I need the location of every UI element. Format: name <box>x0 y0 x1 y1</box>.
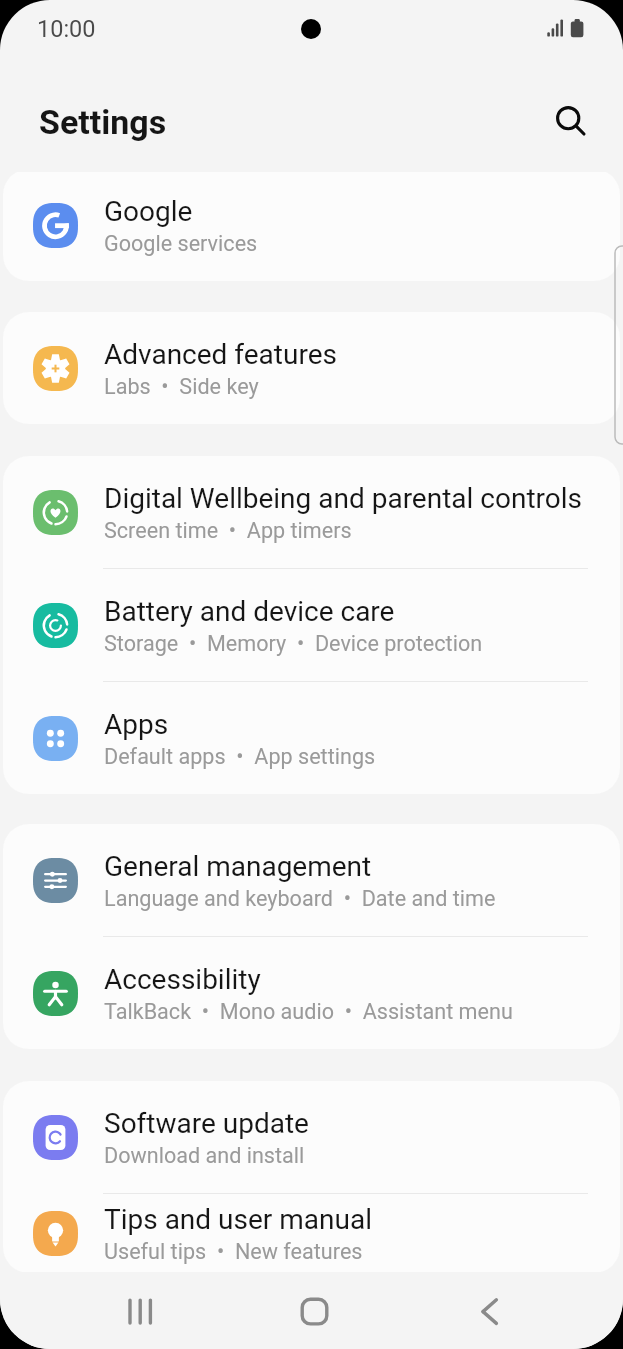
staticText: Useful tips • New features <box>104 1239 363 1264</box>
staticText: Download and install <box>104 1143 305 1168</box>
staticText: Advanced features <box>104 338 337 371</box>
staticText: Labs • Side key <box>104 374 259 399</box>
button[interactable]: Search <box>536 89 600 153</box>
button[interactable]: Battery and device care <box>3 569 620 681</box>
staticText: Storage • Memory • Device protection <box>104 631 483 656</box>
staticText: Screen time • App timers <box>104 518 352 543</box>
staticText: 10:00 <box>37 15 96 43</box>
button[interactable]: Digital Wellbeing and parental controls <box>3 456 620 568</box>
button[interactable]: Advanced features <box>3 312 620 424</box>
staticText: Settings <box>39 102 167 142</box>
staticText: TalkBack • Mono audio • Assistant menu <box>104 999 513 1024</box>
staticText: General management <box>104 850 372 883</box>
staticText: Tips and user manual <box>104 1203 372 1236</box>
button[interactable]: Tips and user manual <box>3 1194 620 1273</box>
button[interactable]: Back <box>416 1272 623 1349</box>
staticText: Google <box>104 195 193 228</box>
staticText: Language and keyboard • Date and time <box>104 886 496 911</box>
button[interactable]: Apps <box>3 682 620 794</box>
button[interactable]: Software update <box>3 1081 620 1193</box>
button[interactable]: Google <box>3 172 620 281</box>
staticText: Digital Wellbeing and parental controls <box>104 482 583 515</box>
staticText: Default apps • App settings <box>104 744 376 769</box>
staticText: Accessibility <box>104 963 261 996</box>
button[interactable]: Recent apps <box>0 1272 208 1349</box>
staticText: Battery and device care <box>104 595 395 628</box>
button[interactable]: Home <box>208 1272 416 1349</box>
button[interactable]: Accessibility <box>3 937 620 1049</box>
staticText: Google services <box>104 231 258 256</box>
button[interactable]: General management <box>3 824 620 936</box>
staticText: Apps <box>104 708 169 741</box>
staticText: Software update <box>104 1107 309 1140</box>
